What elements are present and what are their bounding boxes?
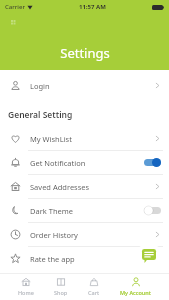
staticText: 11:57 AM: [79, 3, 106, 11]
staticText: Rate the app: [30, 254, 75, 264]
staticText: Shop: [54, 289, 68, 296]
button[interactable]: Menu: [8, 17, 20, 29]
button[interactable]: My WishList: [0, 127, 169, 150]
staticText: Home: [18, 289, 34, 296]
staticText: Dark Theme: [30, 206, 74, 216]
button[interactable]: Toggle on: [144, 158, 161, 167]
button[interactable]: Cart: [86, 273, 102, 300]
staticText: Order History: [30, 230, 78, 240]
button[interactable]: Rate the app: [0, 247, 169, 270]
staticText: Saved Addresses: [30, 182, 90, 192]
button[interactable]: Get Notification: [0, 151, 169, 174]
button[interactable]: My Account: [118, 273, 153, 300]
staticText: Login: [30, 81, 50, 91]
staticText: Carrier: [5, 3, 25, 11]
staticText: Settings: [60, 44, 110, 62]
staticText: Get Notification: [30, 158, 86, 168]
button[interactable]: Home: [16, 273, 36, 300]
button[interactable]: Dark Theme: [0, 199, 169, 222]
button[interactable]: Order History: [0, 223, 169, 246]
staticText: Cart: [88, 289, 100, 296]
button[interactable]: Toggle off: [144, 206, 161, 215]
button[interactable]: Shop: [52, 273, 70, 300]
button[interactable]: Login: [0, 74, 169, 97]
staticText: My Account: [120, 289, 151, 296]
button[interactable]: Chat support: [136, 243, 162, 269]
button[interactable]: Saved Addresses: [0, 175, 169, 198]
staticText: General Setting: [8, 109, 73, 121]
staticText: My WishList: [30, 134, 72, 144]
